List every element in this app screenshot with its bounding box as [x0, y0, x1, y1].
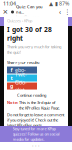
- button[interactable]: f: [7, 66, 37, 73]
- staticText: Stay tuned for more KPop quizzes! Follow…: [12, 126, 59, 142]
- staticText: This is the 3rd quiz of the KProfiles Kq…: [19, 100, 60, 110]
- button[interactable]: g: [7, 82, 37, 89]
- staticText: Thank you very much for taking the quiz!: [7, 44, 61, 55]
- staticText: Share your results:: [7, 60, 40, 65]
- staticText: g: [10, 82, 13, 90]
- staticText: 11:04: [3, 0, 16, 7]
- staticText: Google+: [15, 79, 27, 93]
- staticText: Do not forget to leave a comment if you …: [7, 112, 64, 128]
- staticText: Twitter: [15, 71, 27, 85]
- staticText: Profiles: [28, 11, 51, 32]
- staticText: ‹: [59, 8, 61, 16]
- button[interactable]: Search: [61, 17, 70, 26]
- staticText: ⋮: [64, 8, 71, 16]
- staticText: t: [10, 74, 12, 82]
- staticText: Facebook: [15, 59, 26, 81]
- staticText: ▲ ▮ 87%: [49, 0, 69, 7]
- button[interactable]: Close: [2, 7, 9, 16]
- button[interactable]: Share: [57, 7, 63, 16]
- staticText: Continue reading: [17, 92, 46, 98]
- button[interactable]: Menu: [2, 17, 11, 26]
- staticText: I got 30 of 28 right: [7, 25, 52, 43]
- button[interactable]: More options: [65, 7, 70, 16]
- staticText: • • •: [32, 143, 40, 149]
- staticText: kprofiles.com: [16, 15, 40, 20]
- staticText: Note:: [7, 100, 18, 105]
- staticText: f: [10, 66, 12, 74]
- staticText: ✕: [2, 8, 8, 16]
- staticText: Quizzes › KPop: [7, 18, 32, 23]
- staticText: K: [21, 14, 28, 29]
- button[interactable]: t: [7, 74, 37, 81]
- staticText: Quiz: Can you na...: [16, 4, 43, 15]
